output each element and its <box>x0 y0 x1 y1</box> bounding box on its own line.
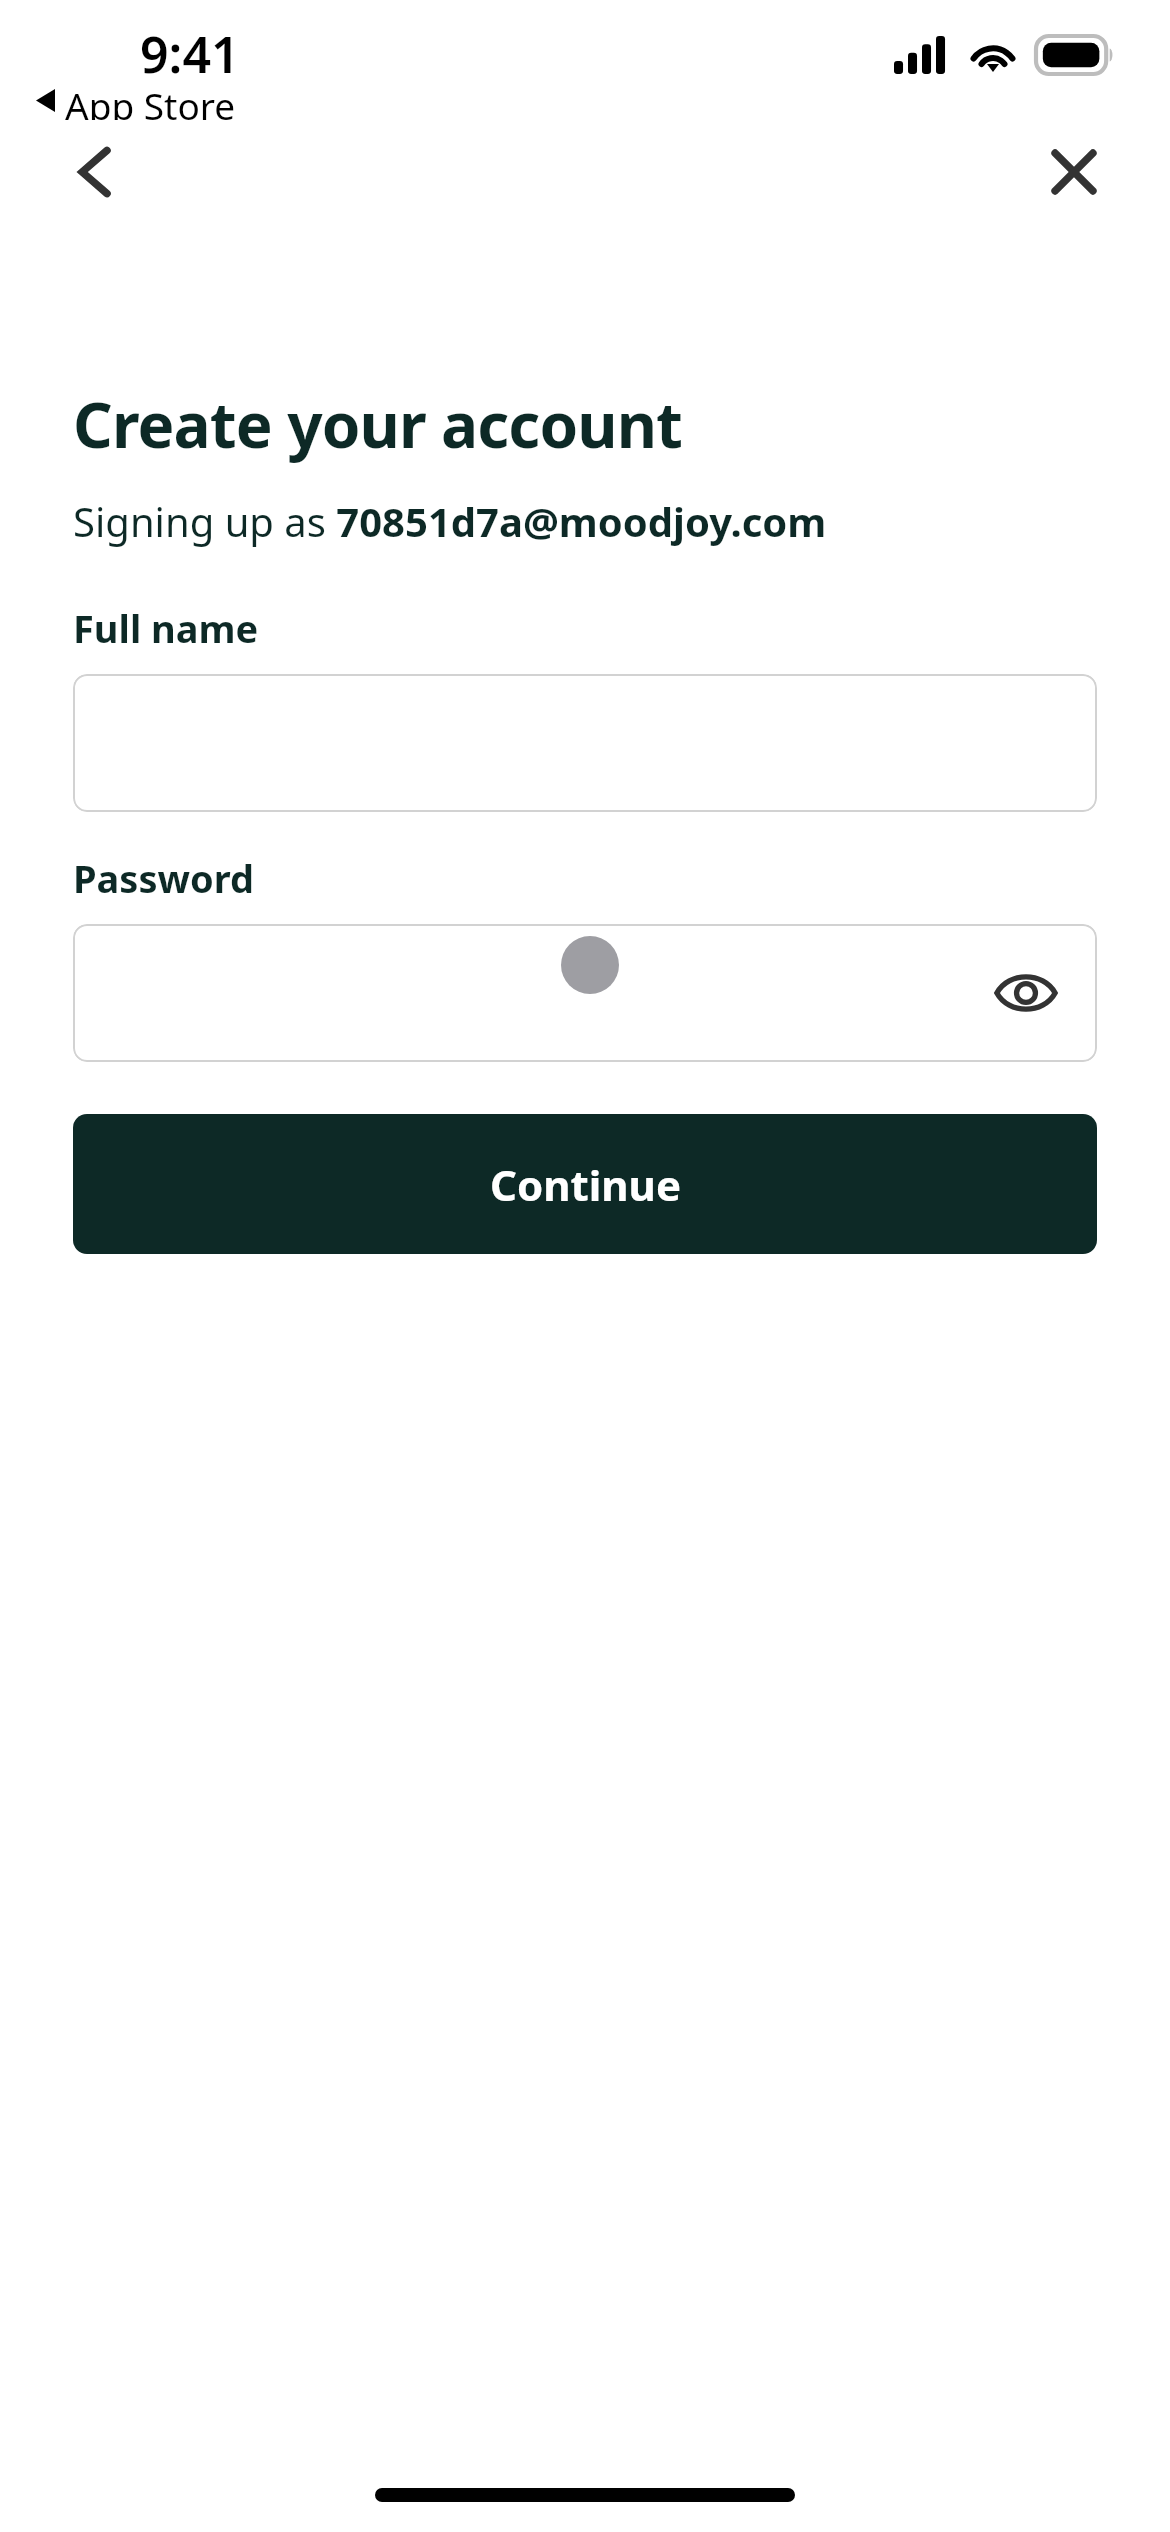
button[interactable]: Back <box>48 124 144 220</box>
staticText: App Store <box>65 80 236 120</box>
staticText: Create your account <box>73 382 683 466</box>
button[interactable]: Close <box>1026 124 1122 220</box>
button[interactable]: App Store <box>36 80 236 120</box>
staticText: Full name <box>73 602 259 654</box>
staticText: Signing up as 70851d7a@moodjoy.com <box>73 494 827 548</box>
staticText: Password <box>73 852 255 904</box>
button[interactable]: Continue <box>73 1114 1097 1254</box>
button[interactable]: Password field <box>73 924 1097 1062</box>
button[interactable]: Show password <box>983 950 1069 1036</box>
staticText: Continue <box>490 1156 681 1213</box>
button[interactable]: Full name field <box>73 674 1097 812</box>
staticText: 9:41 <box>140 20 240 88</box>
